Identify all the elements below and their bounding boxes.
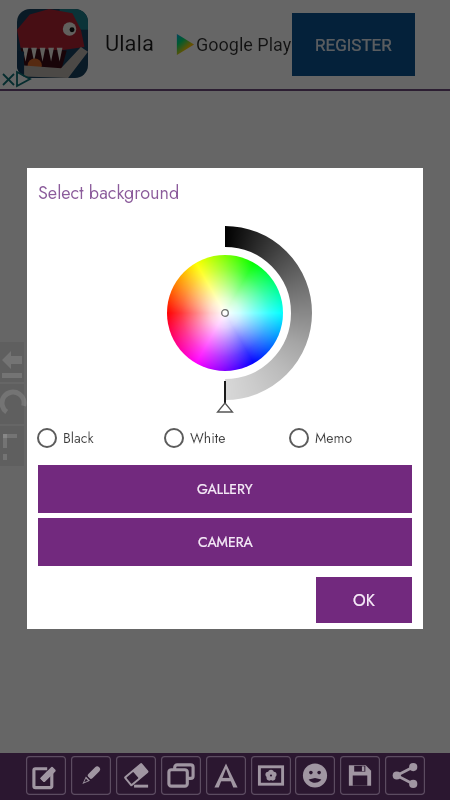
button[interactable]: Ulala app icon — [17, 9, 88, 78]
button[interactable]: Eraser — [116, 756, 156, 795]
button[interactable]: Memo — [288, 425, 353, 451]
staticText: White — [190, 428, 226, 448]
staticText: Memo — [315, 428, 353, 448]
staticText: Ulala — [105, 31, 154, 57]
button[interactable]: Layers — [161, 756, 201, 795]
button[interactable]: White — [163, 425, 226, 451]
button[interactable]: Black — [36, 425, 94, 451]
staticText: OK — [353, 589, 375, 612]
button[interactable]: Brush — [71, 756, 111, 795]
staticText: Google Play — [196, 34, 292, 55]
button[interactable]: Side tools — [0, 290, 24, 470]
button[interactable]: REGISTER — [292, 13, 415, 76]
button[interactable]: Text — [206, 756, 246, 795]
staticText: Black — [63, 428, 94, 448]
button[interactable]: Save — [340, 756, 380, 795]
button[interactable]: Edit — [26, 756, 66, 795]
button[interactable]: Share — [385, 756, 425, 795]
staticText: GALLERY — [197, 479, 253, 499]
button[interactable]: GALLERY — [38, 465, 412, 513]
button[interactable]: OK — [316, 577, 412, 623]
staticText: Select background — [38, 180, 180, 206]
staticText: REGISTER — [315, 35, 392, 55]
button[interactable]: Ad choices — [16, 71, 31, 87]
button[interactable]: Sticker — [251, 756, 291, 795]
button[interactable]: Emoji — [295, 756, 335, 795]
staticText: CAMERA — [198, 532, 253, 552]
button[interactable]: Close ad — [2, 73, 15, 86]
button[interactable]: CAMERA — [38, 518, 412, 566]
